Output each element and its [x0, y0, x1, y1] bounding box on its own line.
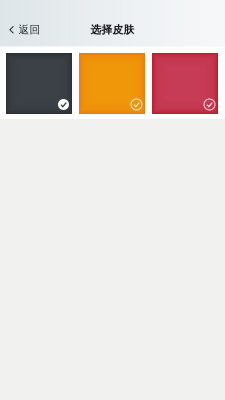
- button[interactable]: 返回: [0, 13, 49, 46]
- staticText: 选择皮肤: [90, 23, 134, 36]
- button[interactable]: 深色皮肤: [6, 53, 72, 114]
- button[interactable]: 橙色皮肤: [79, 53, 145, 114]
- button[interactable]: 红色皮肤: [152, 53, 218, 114]
- staticText: 返回: [18, 23, 40, 36]
